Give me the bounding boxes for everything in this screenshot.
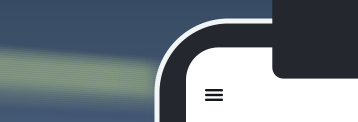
button[interactable]: Menu	[197, 80, 231, 110]
